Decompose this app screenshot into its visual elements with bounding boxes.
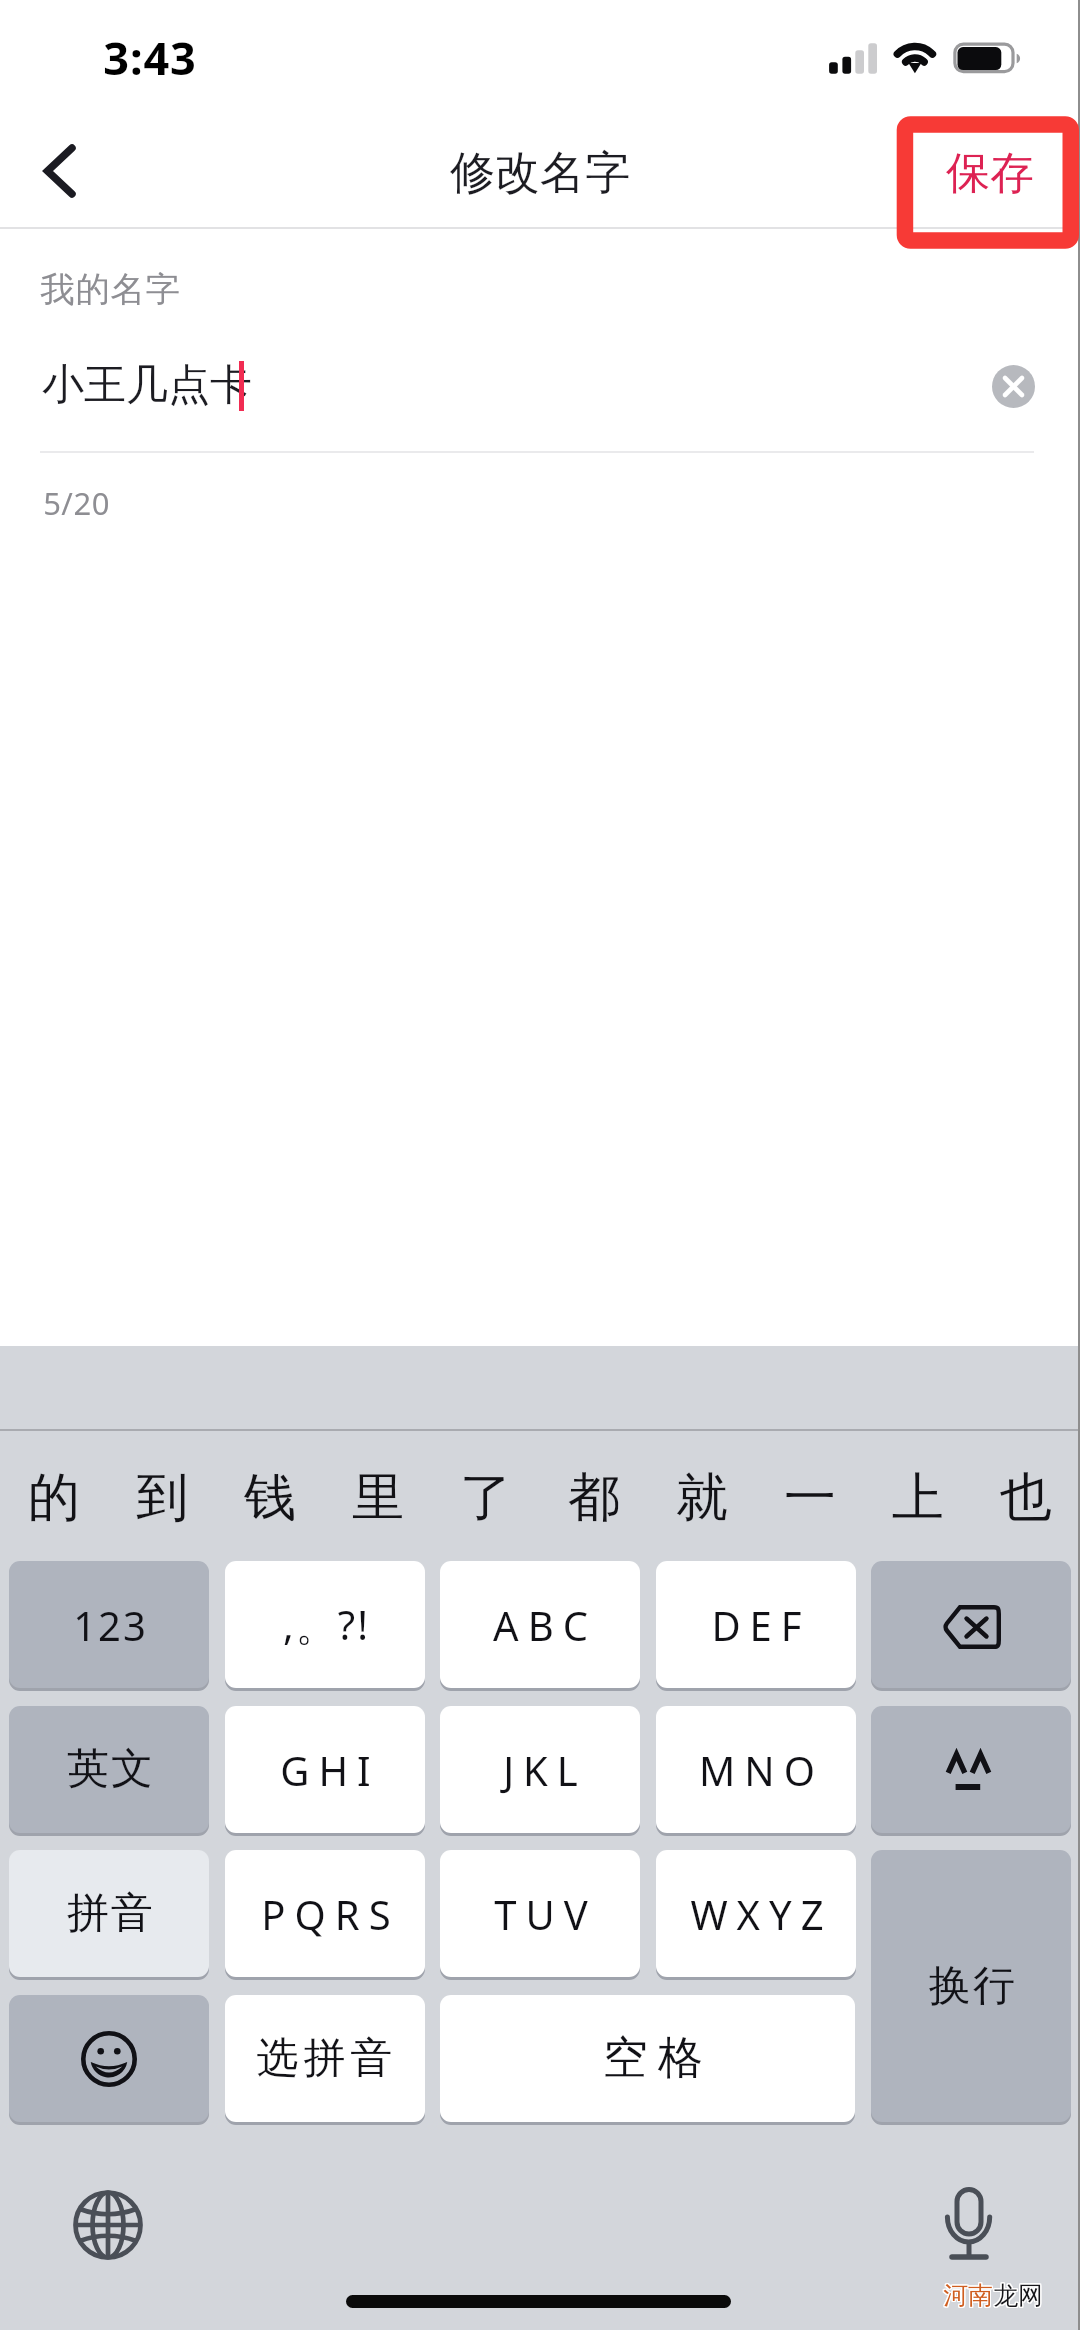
button[interactable]: 到 [108,1433,216,1563]
button[interactable]: JKL [440,1706,640,1833]
button[interactable]: 里 [324,1433,432,1563]
staticText: DEF [711,1598,811,1652]
button[interactable]: Backspace [871,1561,1071,1688]
staticText: TUV [494,1887,597,1941]
staticText: 选拼音 [254,2032,395,2085]
button[interactable]: 保存 [930,135,1050,211]
staticText: 龙网 [994,2279,1044,2310]
staticText: 龙网 [992,2280,1042,2311]
staticText: 了 [460,1465,512,1531]
staticText: MNO [699,1743,824,1797]
staticText: GHI [280,1743,380,1797]
button[interactable]: ABC [440,1561,640,1688]
staticText: PQRS [261,1887,400,1941]
staticText: 的 [28,1465,80,1531]
button[interactable]: Clear text [992,365,1035,408]
button[interactable]: 都 [540,1433,648,1563]
button[interactable]: 选拼音 [225,1995,425,2122]
button[interactable]: WXYZ [656,1850,856,1977]
button[interactable]: ,。?! [225,1561,425,1688]
staticText: 河南 [943,2281,993,2312]
button[interactable]: 空格 [440,1995,855,2122]
button[interactable]: Back [10,128,106,216]
staticText: 5/20 [43,482,110,524]
staticText: 河南 [942,2281,992,2312]
staticText: 里 [352,1465,404,1531]
button[interactable]: GHI [225,1706,425,1833]
staticText: 换行 [928,1960,1016,2013]
staticText: JKL [503,1743,587,1797]
staticText: 河南 [943,2279,993,2310]
button[interactable]: 换行 [871,1850,1071,2122]
staticText: WXYZ [690,1887,833,1941]
button[interactable]: Voice input [925,2178,1013,2270]
button[interactable]: 拼音 [9,1850,209,1977]
button[interactable]: 了 [432,1433,540,1563]
staticText: 龙网 [992,2279,1042,2310]
button[interactable]: Emoticon [871,1706,1071,1833]
staticText: 拼音 [66,1887,154,1940]
staticText: 也 [1000,1465,1052,1531]
staticText: 就 [676,1465,728,1531]
staticText: 123 [73,1598,148,1652]
button[interactable]: MNO [656,1706,856,1833]
button[interactable]: 钱 [216,1433,324,1563]
staticText: 河南 [942,2280,992,2311]
staticText: 龙网 [993,2279,1043,2310]
button[interactable]: Switch language [73,2190,143,2260]
staticText: 河南 [943,2280,993,2311]
staticText: 小王几点卡 [42,359,252,412]
staticText: 钱 [244,1465,296,1531]
staticText: 英文 [66,1743,154,1796]
staticText: 河南 [942,2279,992,2310]
staticText: 都 [568,1465,620,1531]
button[interactable]: 上 [864,1433,972,1563]
staticText: ABC [493,1598,597,1652]
staticText: 龙网 [993,2280,1043,2311]
staticText: 空格 [598,2030,708,2087]
staticText: 保存 [946,146,1034,201]
button[interactable]: TUV [440,1850,640,1977]
button[interactable]: 也 [972,1433,1080,1563]
button[interactable]: DEF [656,1561,856,1688]
button[interactable]: PQRS [225,1850,425,1977]
staticText: 到 [136,1465,188,1531]
staticText: 3:43 [103,27,197,88]
button[interactable]: 就 [648,1433,756,1563]
staticText: 河南 [944,2280,994,2311]
button[interactable]: 英文 [9,1706,209,1833]
staticText: 一 [784,1465,836,1531]
staticText: 我的名字 [40,268,181,311]
staticText: 河南 [944,2281,994,2312]
staticText: ,。?! [283,1597,370,1652]
staticText: 上 [892,1465,944,1531]
staticText: 河南 [944,2279,994,2310]
button[interactable]: 123 [9,1561,209,1688]
staticText: 龙网 [994,2281,1044,2312]
button[interactable]: 小王几点卡 [40,355,940,417]
button[interactable]: 的 [0,1433,108,1563]
staticText: 修改名字 [450,145,630,202]
staticText: 龙网 [993,2281,1043,2312]
staticText: 龙网 [994,2280,1044,2311]
staticText: 龙网 [992,2281,1042,2312]
button[interactable]: Emoji keyboard [9,1995,209,2122]
button[interactable]: 一 [756,1433,864,1563]
